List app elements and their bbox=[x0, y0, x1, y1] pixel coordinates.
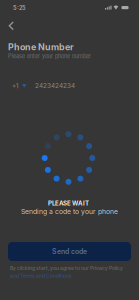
button[interactable]: Send code bbox=[8, 242, 131, 261]
staticText: Phone Number bbox=[8, 41, 74, 52]
staticText: 2423424234 bbox=[35, 82, 75, 89]
staticText: PLEASE WAIT bbox=[48, 199, 89, 207]
button[interactable]: Back bbox=[3, 16, 19, 36]
staticText: By clicking start, you agree to our Priv… bbox=[10, 265, 123, 271]
staticText: and Terms and Conditions bbox=[10, 273, 72, 279]
button[interactable]: +1 bbox=[9, 78, 30, 94]
staticText: Sending a code to your phone bbox=[21, 207, 118, 216]
staticText: Send code bbox=[52, 247, 87, 256]
staticText: 5:25 bbox=[13, 5, 26, 11]
staticText: Please enter your phone number bbox=[8, 53, 91, 60]
staticText: +1 bbox=[12, 82, 19, 90]
